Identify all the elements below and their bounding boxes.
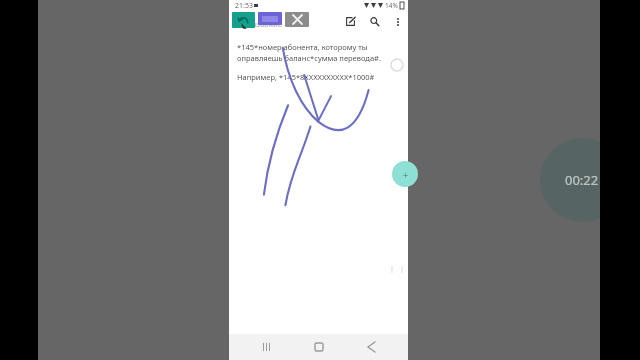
staticText: ＋ <box>401 169 410 180</box>
button[interactable]: Search <box>367 14 382 29</box>
staticText: 00:22 <box>565 171 599 189</box>
staticText: 14% <box>385 1 398 10</box>
staticText: Название <box>247 20 282 30</box>
button[interactable]: Pen colour <box>258 12 282 25</box>
button[interactable]: More options <box>391 15 404 28</box>
button[interactable]: Undo <box>232 12 255 28</box>
button[interactable]: Home <box>304 334 334 360</box>
staticText: Например, *145*8XXXXXXXXXX*1000# <box>237 72 375 82</box>
button[interactable]: Compose note <box>392 161 418 187</box>
button[interactable]: Back <box>356 334 386 360</box>
button[interactable]: Recent apps <box>251 334 281 360</box>
staticText: 21:53 <box>235 1 253 11</box>
button[interactable]: Close <box>285 12 309 27</box>
staticText: *145*номер абонента, которому ты оправля… <box>237 42 398 63</box>
button[interactable]: Edit <box>343 14 358 29</box>
